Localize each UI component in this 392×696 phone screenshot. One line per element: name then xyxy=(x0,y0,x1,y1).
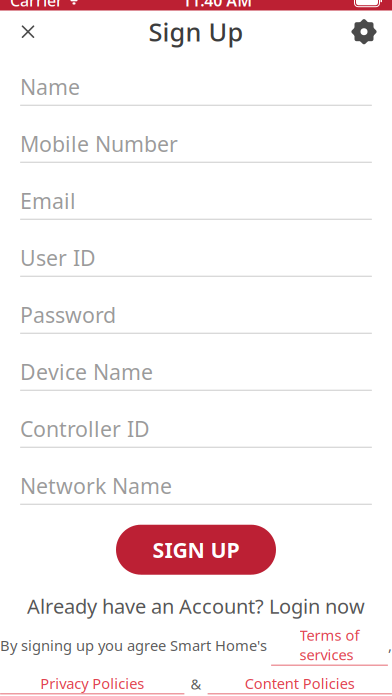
button[interactable]: User ID xyxy=(20,240,372,277)
button[interactable]: Name xyxy=(20,69,372,106)
staticText: Name xyxy=(20,72,80,101)
staticText: Password xyxy=(20,300,116,329)
button[interactable]: Already have an Account? Login now xyxy=(15,587,377,625)
staticText: Terms of services xyxy=(299,625,359,664)
staticText: & xyxy=(190,674,201,694)
button[interactable]: Email xyxy=(20,183,372,220)
staticText: User ID xyxy=(20,243,96,272)
staticText: Mobile Number xyxy=(20,129,178,158)
staticText: Already have an Account? Login now xyxy=(27,593,365,619)
staticText: Carrier xyxy=(10,0,63,11)
button[interactable]: Privacy Policies xyxy=(0,673,184,694)
staticText: By signing up you agree Smart Home's xyxy=(0,636,271,655)
button[interactable]: Device Name xyxy=(20,354,372,391)
staticText: Privacy Policies xyxy=(40,673,144,693)
staticText: Controller ID xyxy=(20,414,150,443)
button[interactable]: Network Name xyxy=(20,468,372,505)
staticText: Sign Up xyxy=(148,15,243,48)
button[interactable]: Settings xyxy=(342,11,386,53)
staticText: Network Name xyxy=(20,471,172,500)
staticText: , xyxy=(388,636,392,655)
staticText: Device Name xyxy=(20,357,153,386)
button[interactable]: Mobile Number xyxy=(20,126,372,163)
button[interactable]: Password xyxy=(20,297,372,334)
staticText: SIGN UP xyxy=(152,535,239,564)
button[interactable]: Content Policies xyxy=(207,673,392,694)
staticText: Email xyxy=(20,186,76,215)
staticText: 11:40 AM xyxy=(182,0,252,11)
staticText: Content Policies xyxy=(245,673,355,693)
button[interactable]: Terms of services xyxy=(271,625,388,666)
button[interactable]: SIGN UP xyxy=(116,525,276,575)
button[interactable]: Close xyxy=(6,11,50,53)
button[interactable]: Controller ID xyxy=(20,411,372,448)
